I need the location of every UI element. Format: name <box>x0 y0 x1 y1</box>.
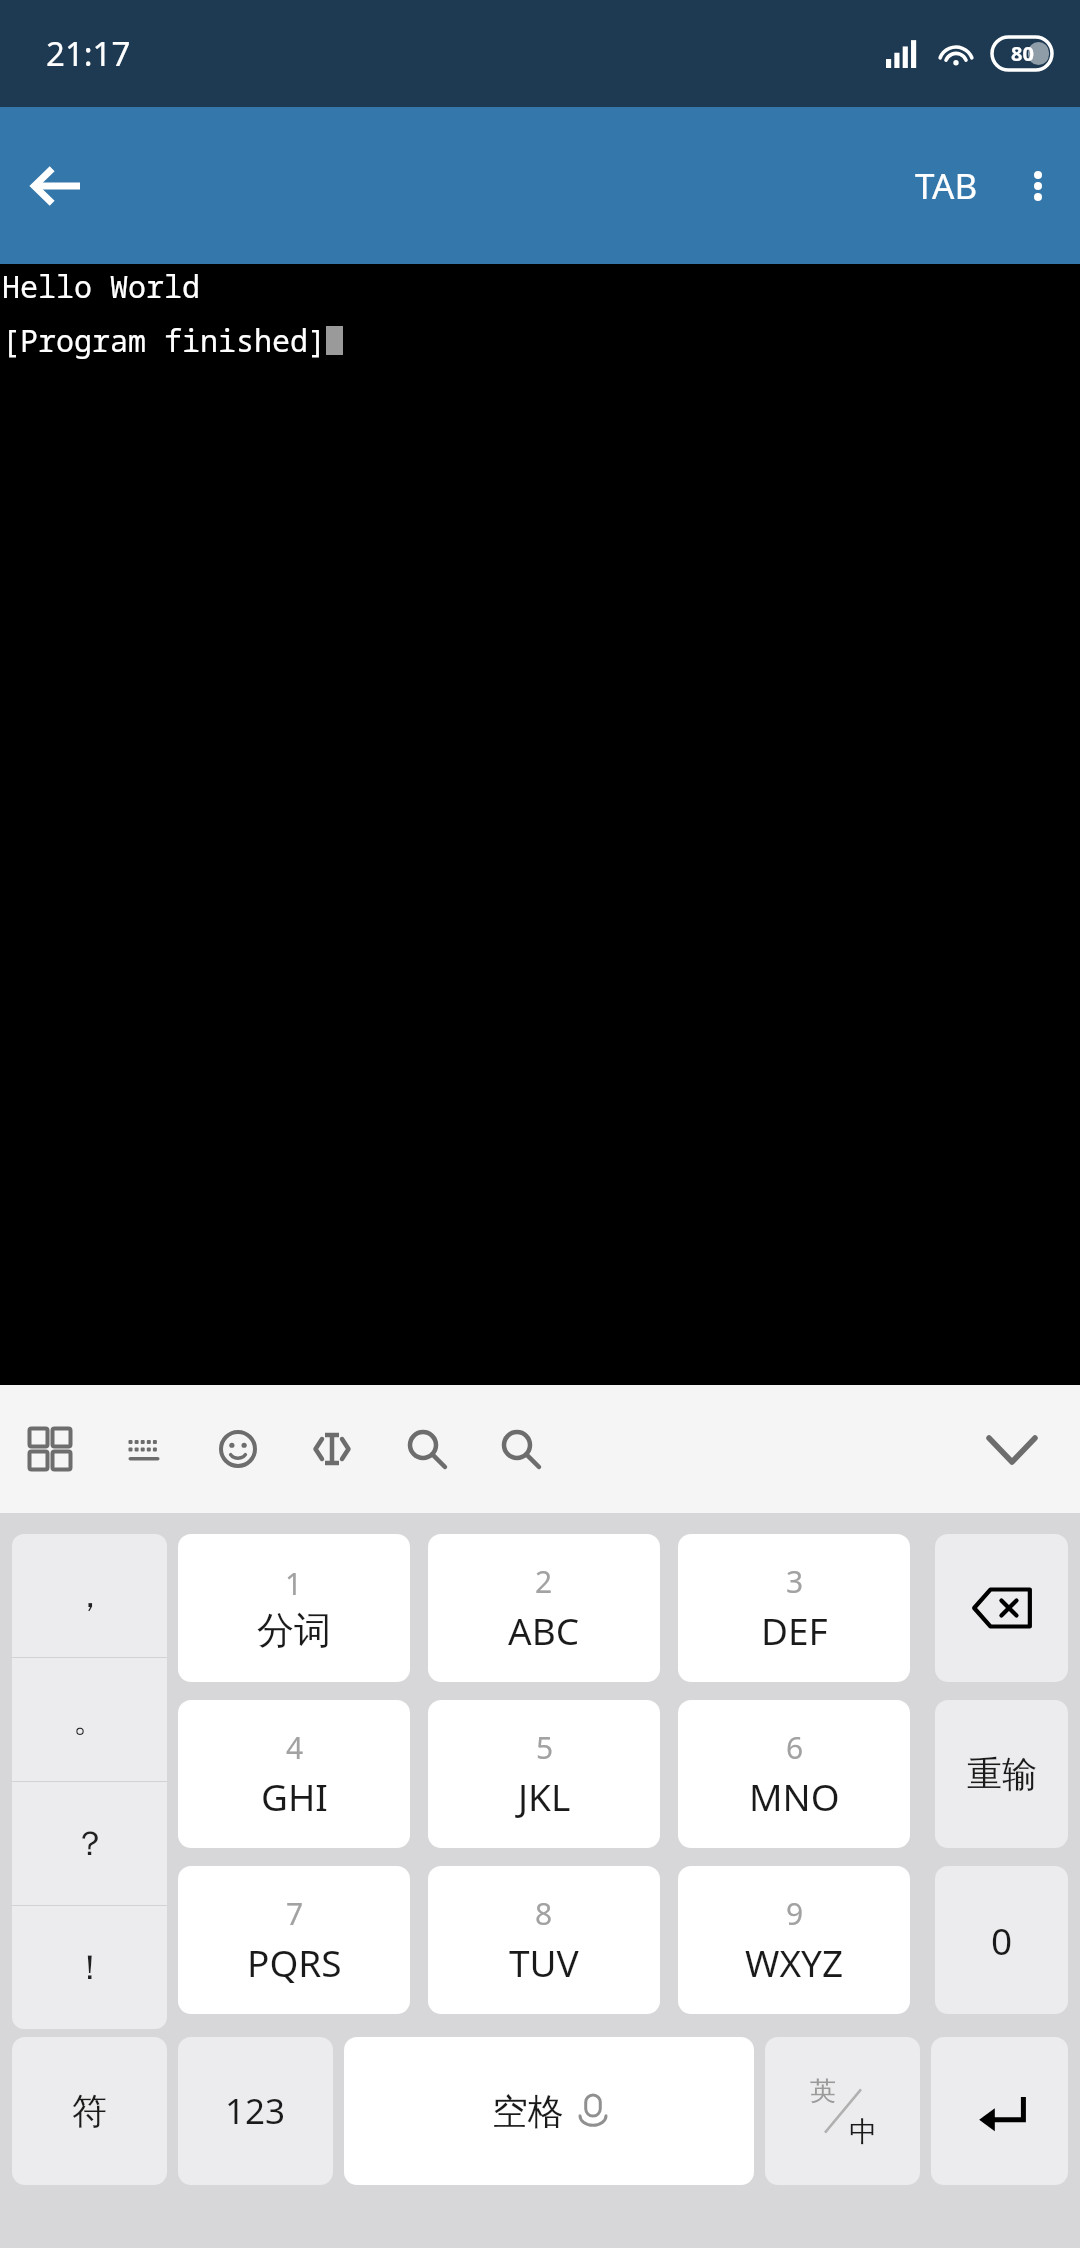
staticText: 空格 <box>492 2089 564 2134</box>
button[interactable]: Backspace <box>935 1534 1068 1682</box>
staticText: MNO <box>749 1771 840 1821</box>
staticText: GHI <box>261 1771 328 1821</box>
staticText: ！ <box>73 1946 107 1989</box>
staticText: 8 <box>535 1893 553 1934</box>
button[interactable]: Clipboard <box>386 1409 466 1489</box>
staticText: 分词 <box>257 1607 331 1654</box>
staticText: 符 <box>72 2089 107 2133</box>
button[interactable]: 7 <box>178 1866 410 2014</box>
button[interactable]: 8 <box>428 1866 660 2014</box>
staticText: 4 <box>286 1727 304 1768</box>
button[interactable]: 。 <box>12 1658 167 1781</box>
button[interactable]: 123 <box>178 2037 333 2185</box>
staticText: 9 <box>786 1893 804 1934</box>
button[interactable]: ！ <box>12 1906 167 2029</box>
button[interactable]: 1 <box>178 1534 410 1682</box>
button[interactable]: TAB <box>899 150 994 222</box>
button[interactable]: 5 <box>428 1700 660 1848</box>
staticText: 中 <box>849 2114 877 2149</box>
staticText: Hello World <box>2 266 200 307</box>
button[interactable]: Cursor <box>292 1409 372 1489</box>
staticText: TUV <box>509 1937 579 1987</box>
staticText: WXYZ <box>745 1937 844 1987</box>
staticText: PQRS <box>247 1937 342 1987</box>
button[interactable]: Search <box>480 1409 560 1489</box>
staticText: 7 <box>286 1893 304 1934</box>
staticText: 2 <box>535 1561 553 1602</box>
button[interactable]: Language switch <box>765 2037 920 2185</box>
staticText: 5 <box>536 1727 554 1768</box>
staticText: ABC <box>508 1605 580 1655</box>
button[interactable]: 3 <box>678 1534 910 1682</box>
staticText: 80 <box>1011 40 1034 67</box>
staticText: 重输 <box>967 1752 1037 1796</box>
button[interactable]: More options <box>1000 148 1076 224</box>
staticText: 123 <box>225 2087 286 2135</box>
button[interactable]: 6 <box>678 1700 910 1848</box>
staticText: 。 <box>73 1698 107 1741</box>
staticText: TAB <box>915 162 978 210</box>
staticText: ， <box>73 1574 107 1617</box>
staticText: ？ <box>73 1822 107 1865</box>
staticText: 6 <box>786 1727 804 1768</box>
button[interactable]: 重输 <box>935 1700 1068 1848</box>
button[interactable]: ， <box>12 1534 167 1657</box>
button[interactable]: ？ <box>12 1782 167 1905</box>
button[interactable]: Keyboard <box>104 1409 184 1489</box>
staticText: 英 <box>810 2075 836 2108</box>
staticText: DEF <box>761 1605 828 1655</box>
button[interactable]: Hide keyboard <box>972 1409 1052 1489</box>
button[interactable]: 2 <box>428 1534 660 1682</box>
button[interactable]: Layouts <box>10 1409 90 1489</box>
button[interactable]: 4 <box>178 1700 410 1848</box>
button[interactable]: Enter <box>931 2037 1068 2185</box>
button[interactable]: Emoji <box>198 1409 278 1489</box>
button[interactable]: 0 <box>935 1866 1068 2014</box>
staticText: 0 <box>991 1915 1013 1965</box>
staticText: [Program finished] <box>2 320 326 361</box>
staticText: 21:17 <box>46 31 131 76</box>
button[interactable]: Back <box>18 148 94 224</box>
staticText: JKL <box>518 1771 571 1821</box>
button[interactable]: 9 <box>678 1866 910 2014</box>
staticText: 3 <box>786 1561 804 1602</box>
button[interactable]: 符 <box>12 2037 167 2185</box>
staticText: 1 <box>285 1563 303 1604</box>
button[interactable]: 空格 <box>344 2037 754 2185</box>
